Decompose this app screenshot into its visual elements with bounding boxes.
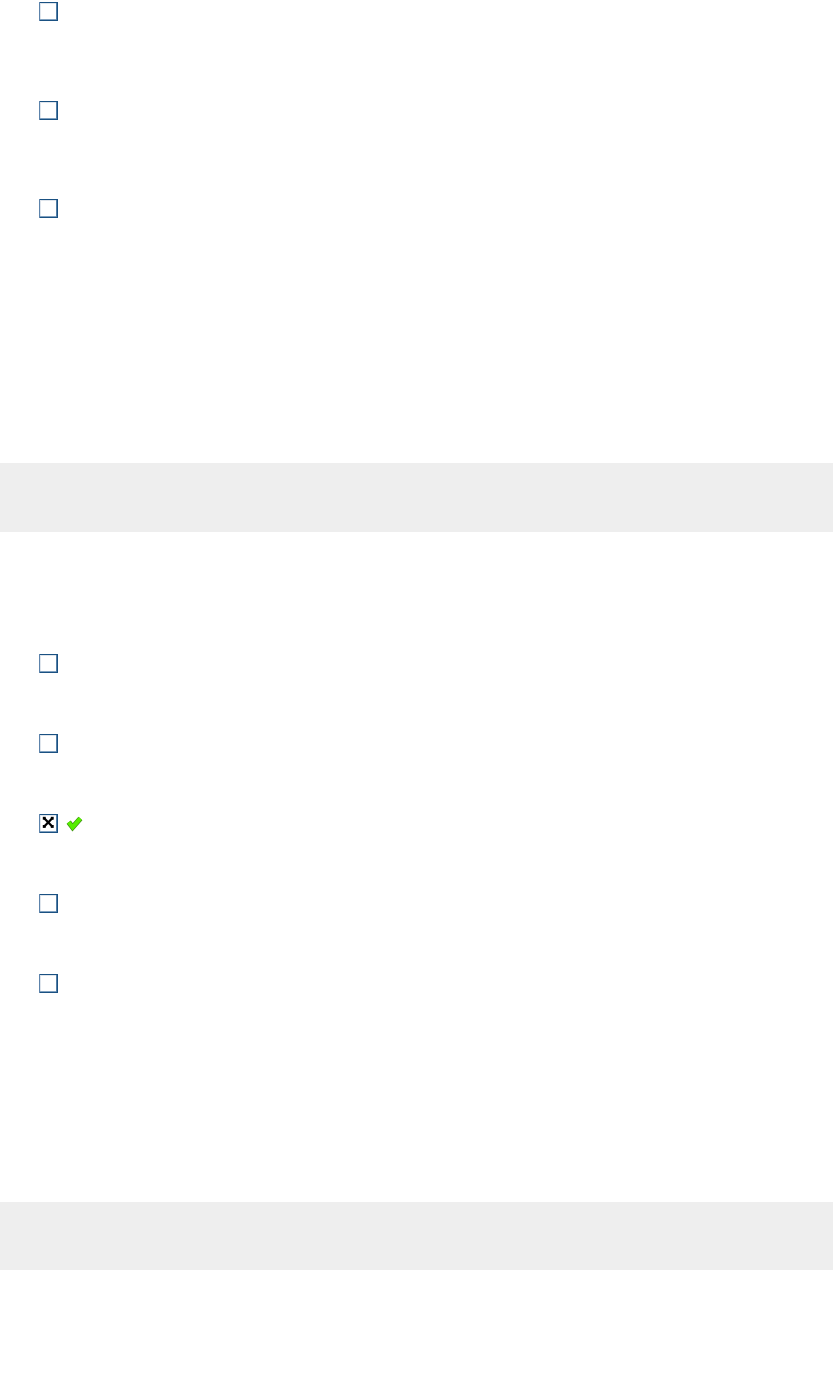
- button[interactable]: Checkbox, not checked: [0, 894, 833, 913]
- button[interactable]: Checkbox, not checked: [0, 974, 833, 993]
- button[interactable]: Verified: [66, 816, 83, 832]
- button[interactable]: Checkbox, not checked: [0, 734, 833, 753]
- button[interactable]: Checkbox, not checked: [39, 654, 58, 673]
- button[interactable]: Checkbox, not checked: [0, 2, 833, 21]
- button[interactable]: Checkbox, not checked: [0, 101, 833, 120]
- button[interactable]: Checkbox with missing image: [0, 814, 833, 833]
- button[interactable]: Checkbox, not checked: [39, 101, 58, 120]
- button[interactable]: Checkbox, not checked: [39, 734, 58, 753]
- button[interactable]: Checkbox, not checked: [39, 974, 58, 993]
- button[interactable]: Checkbox, not checked: [39, 894, 58, 913]
- button[interactable]: Checkbox, not checked: [39, 199, 58, 218]
- button[interactable]: Checkbox, not checked: [0, 199, 833, 218]
- button[interactable]: Checkbox, not checked: [39, 2, 58, 21]
- button[interactable]: Checkbox, not checked: [0, 654, 833, 673]
- button[interactable]: Checkbox with missing image: [39, 814, 58, 833]
